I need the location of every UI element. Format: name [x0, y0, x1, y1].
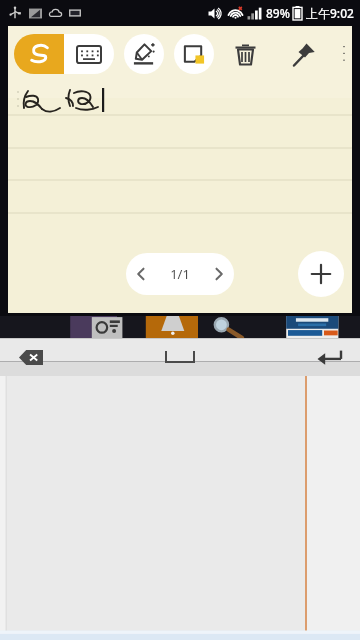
button[interactable]: Space [153, 342, 207, 372]
staticText: 89% [266, 5, 290, 21]
button[interactable]: Previous page [126, 253, 234, 295]
button[interactable]: Add page [298, 251, 344, 297]
button[interactable]: More options [342, 35, 346, 73]
other: Previous page [126, 253, 156, 295]
button[interactable]: Backspace [14, 340, 48, 374]
button[interactable]: Pen [14, 34, 64, 74]
button[interactable]: Keyboard [64, 34, 114, 74]
button[interactable]: Pin [284, 35, 322, 73]
button[interactable]: Sticky note [174, 34, 214, 74]
button[interactable]: Delete [226, 35, 264, 73]
button[interactable]: Highlighter [124, 34, 164, 74]
staticText: 上午9:02 [306, 5, 354, 21]
staticText: 1/1 [170, 265, 190, 283]
button[interactable]: Enter [312, 340, 346, 374]
other: Next page [204, 253, 234, 295]
